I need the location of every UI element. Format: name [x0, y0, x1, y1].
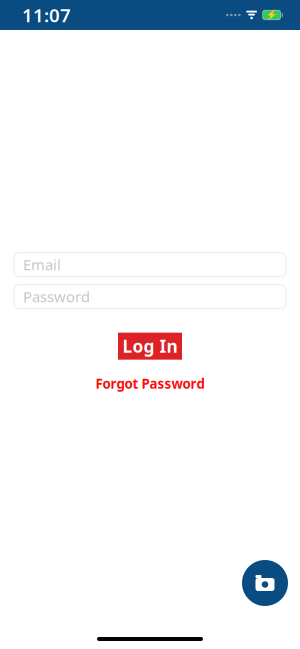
staticText: ⚡ [266, 10, 278, 20]
staticText: Forgot Password [95, 375, 204, 392]
staticText: 11:07 [22, 3, 71, 27]
staticText: Email [23, 255, 61, 274]
button[interactable]: Log In [118, 333, 182, 360]
button[interactable]: Camera [242, 560, 288, 606]
button[interactable]: Forgot Password [85, 369, 214, 398]
staticText: Password [23, 287, 90, 306]
staticText: Log In [122, 335, 177, 358]
